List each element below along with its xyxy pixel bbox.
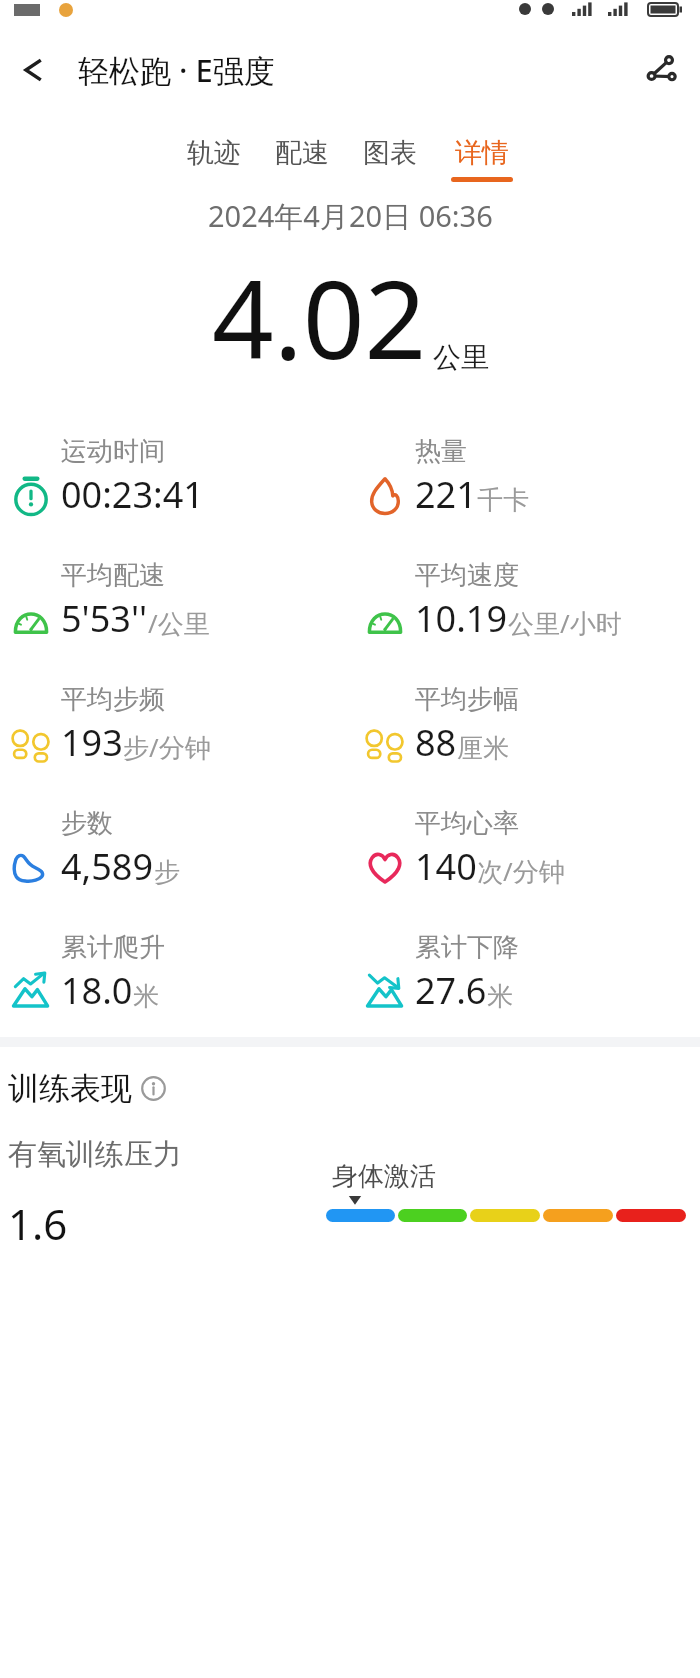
staticText: 4,589 — [61, 842, 154, 891]
staticText: 累计下降 — [415, 931, 519, 964]
staticText: 米 — [133, 980, 159, 1013]
staticText: 平均心率 — [415, 807, 519, 840]
staticText: 轻松跑 · E强度 — [78, 49, 275, 91]
button[interactable]: Back — [8, 42, 64, 98]
button[interactable]: 热量 — [362, 435, 529, 519]
staticText: 平均速度 — [415, 559, 519, 592]
staticText: 配速 — [275, 136, 329, 170]
button[interactable]: 步数 — [8, 807, 180, 891]
staticText: 次/分钟 — [477, 853, 565, 889]
button[interactable]: 累计下降 — [362, 931, 519, 1015]
staticText: 公里/小时 — [508, 605, 622, 641]
staticText: 图表 — [363, 136, 417, 170]
staticText: 193 — [61, 718, 123, 767]
button[interactable]: 平均配速 — [8, 559, 210, 643]
button[interactable]: 累计爬升 — [8, 931, 165, 1015]
staticText: 27.6 — [415, 966, 487, 1015]
staticText: 有氧训练压力 — [8, 1136, 182, 1173]
staticText: 身体激活 — [332, 1160, 436, 1193]
staticText: 221 — [415, 470, 477, 519]
button[interactable]: 平均步频 — [8, 683, 211, 767]
staticText: 步数 — [61, 807, 113, 840]
staticText: 累计爬升 — [61, 931, 165, 964]
staticText: 5'53'' — [61, 594, 148, 643]
staticText: 140 — [415, 842, 477, 891]
staticText: 步/分钟 — [123, 729, 211, 765]
staticText: 步 — [154, 856, 180, 889]
staticText: 热量 — [415, 435, 467, 468]
staticText: 千卡 — [477, 484, 529, 517]
staticText: 详情 — [455, 136, 509, 170]
staticText: 平均步幅 — [415, 683, 519, 716]
staticText: 平均配速 — [61, 559, 165, 592]
button[interactable]: 配速 — [258, 136, 346, 182]
staticText: 米 — [487, 980, 513, 1013]
staticText: 轨迹 — [187, 136, 241, 170]
staticText: /公里 — [148, 605, 210, 641]
staticText: 18.0 — [61, 966, 133, 1015]
button[interactable]: 图表 — [346, 136, 434, 182]
staticText: 88 — [415, 718, 457, 767]
button[interactable]: 运动时间 — [8, 435, 204, 519]
staticText: 10.19 — [415, 594, 508, 643]
button[interactable]: 平均速度 — [362, 559, 622, 643]
staticText: 平均步频 — [61, 683, 165, 716]
button[interactable]: Info — [141, 1076, 166, 1101]
button[interactable]: 轨迹 — [170, 136, 258, 182]
staticText: 1.6 — [8, 1195, 68, 1252]
button[interactable]: Share — [632, 42, 688, 98]
staticText: 2024年4月20日 06:36 — [208, 196, 493, 236]
button[interactable]: 平均步幅 — [362, 683, 519, 767]
staticText: 公里 — [433, 340, 489, 375]
staticText: 00:23:41 — [61, 470, 204, 519]
staticText: 4.02 — [212, 244, 427, 391]
staticText: 运动时间 — [61, 435, 165, 468]
button[interactable]: 详情 — [434, 136, 530, 182]
button[interactable]: 平均心率 — [362, 807, 565, 891]
staticText: 厘米 — [457, 732, 509, 765]
staticText: 训练表现 — [8, 1069, 132, 1108]
